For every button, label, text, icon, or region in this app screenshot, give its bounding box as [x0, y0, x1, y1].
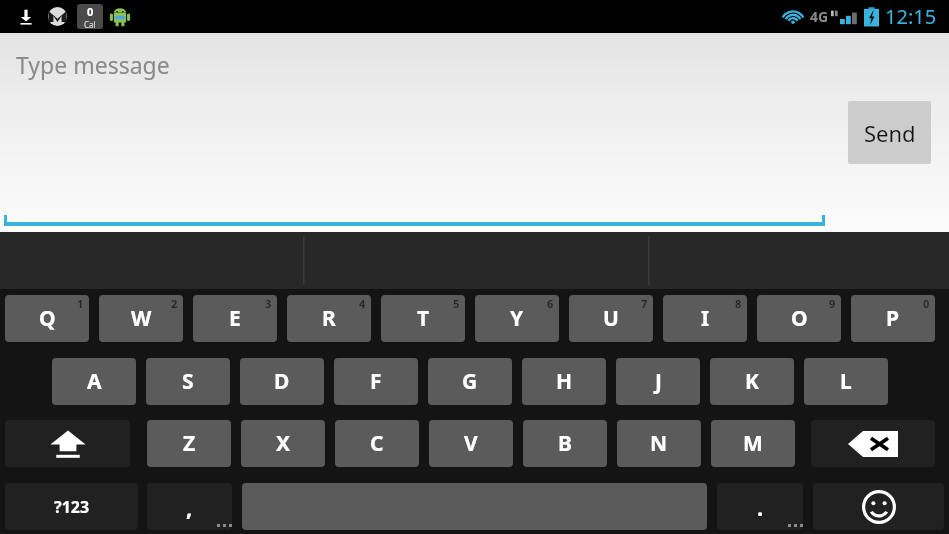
staticText: F: [370, 367, 382, 396]
button[interactable]: P: [851, 295, 935, 342]
staticText: 5: [453, 296, 460, 311]
staticText: U: [603, 304, 619, 333]
staticText: W: [131, 304, 152, 333]
button[interactable]: R: [287, 295, 371, 342]
staticText: Z: [183, 429, 196, 458]
button[interactable]: S: [146, 358, 230, 405]
staticText: V: [464, 429, 478, 458]
staticText: C: [370, 429, 384, 458]
staticText: 1: [77, 296, 84, 311]
staticText: Y: [510, 304, 524, 333]
staticText: 8: [735, 296, 742, 311]
button[interactable]: Emoji: [813, 483, 944, 530]
button[interactable]: H: [522, 358, 606, 405]
staticText: 3: [265, 296, 272, 311]
staticText: 6: [547, 296, 554, 311]
button[interactable]: Symbols: [5, 483, 138, 530]
button[interactable]: Shift: [5, 420, 130, 467]
button[interactable]: G: [428, 358, 512, 405]
staticText: .: [757, 492, 764, 522]
staticText: N: [650, 429, 668, 458]
staticText: P: [886, 304, 900, 333]
button[interactable]: Backspace: [811, 420, 935, 467]
staticText: 0: [87, 4, 94, 19]
button[interactable]: Period: [717, 483, 803, 530]
button[interactable]: U: [569, 295, 653, 342]
staticText: K: [745, 367, 759, 396]
staticText: 4: [359, 296, 366, 311]
staticText: E: [229, 304, 241, 333]
button[interactable]: N: [617, 420, 701, 467]
button[interactable]: I: [663, 295, 747, 342]
button[interactable]: T: [381, 295, 465, 342]
button[interactable]: A: [52, 358, 136, 405]
staticText: 0: [923, 296, 930, 311]
staticText: M: [743, 429, 763, 458]
button[interactable]: B: [523, 420, 607, 467]
button[interactable]: J: [616, 358, 700, 405]
button[interactable]: O: [757, 295, 841, 342]
button[interactable]: Send: [848, 101, 931, 164]
staticText: R: [322, 304, 336, 333]
staticText: X: [276, 429, 291, 458]
button[interactable]: W: [99, 295, 183, 342]
staticText: Q: [39, 304, 56, 333]
button[interactable]: E: [193, 295, 277, 342]
staticText: L: [840, 367, 852, 396]
button[interactable]: M: [711, 420, 795, 467]
button[interactable]: C: [335, 420, 419, 467]
staticText: 12:15: [885, 3, 937, 30]
button[interactable]: Comma: [147, 483, 232, 530]
staticText: Cal: [84, 19, 96, 29]
staticText: Type message: [16, 49, 170, 80]
staticText: Send: [864, 118, 916, 148]
staticText: ?123: [54, 496, 90, 518]
staticText: B: [558, 429, 572, 458]
button[interactable]: V: [429, 420, 513, 467]
staticText: A: [87, 367, 102, 396]
staticText: G: [462, 367, 478, 396]
button[interactable]: X: [241, 420, 325, 467]
staticText: S: [182, 367, 194, 396]
staticText: T: [417, 304, 430, 333]
staticText: J: [655, 367, 662, 396]
button[interactable]: Z: [147, 420, 231, 467]
staticText: I: [701, 304, 710, 333]
staticText: 9: [829, 296, 836, 311]
staticText: 2: [171, 296, 178, 311]
staticText: ,: [186, 492, 193, 522]
button[interactable]: Q: [5, 295, 89, 342]
button[interactable]: Y: [475, 295, 559, 342]
staticText: 4G: [810, 7, 829, 26]
button[interactable]: L: [804, 358, 888, 405]
button[interactable]: K: [710, 358, 794, 405]
staticText: H: [556, 367, 573, 396]
staticText: D: [274, 367, 290, 396]
button[interactable]: F: [334, 358, 418, 405]
staticText: 7: [641, 296, 648, 311]
button[interactable]: D: [240, 358, 324, 405]
staticText: O: [791, 304, 808, 333]
